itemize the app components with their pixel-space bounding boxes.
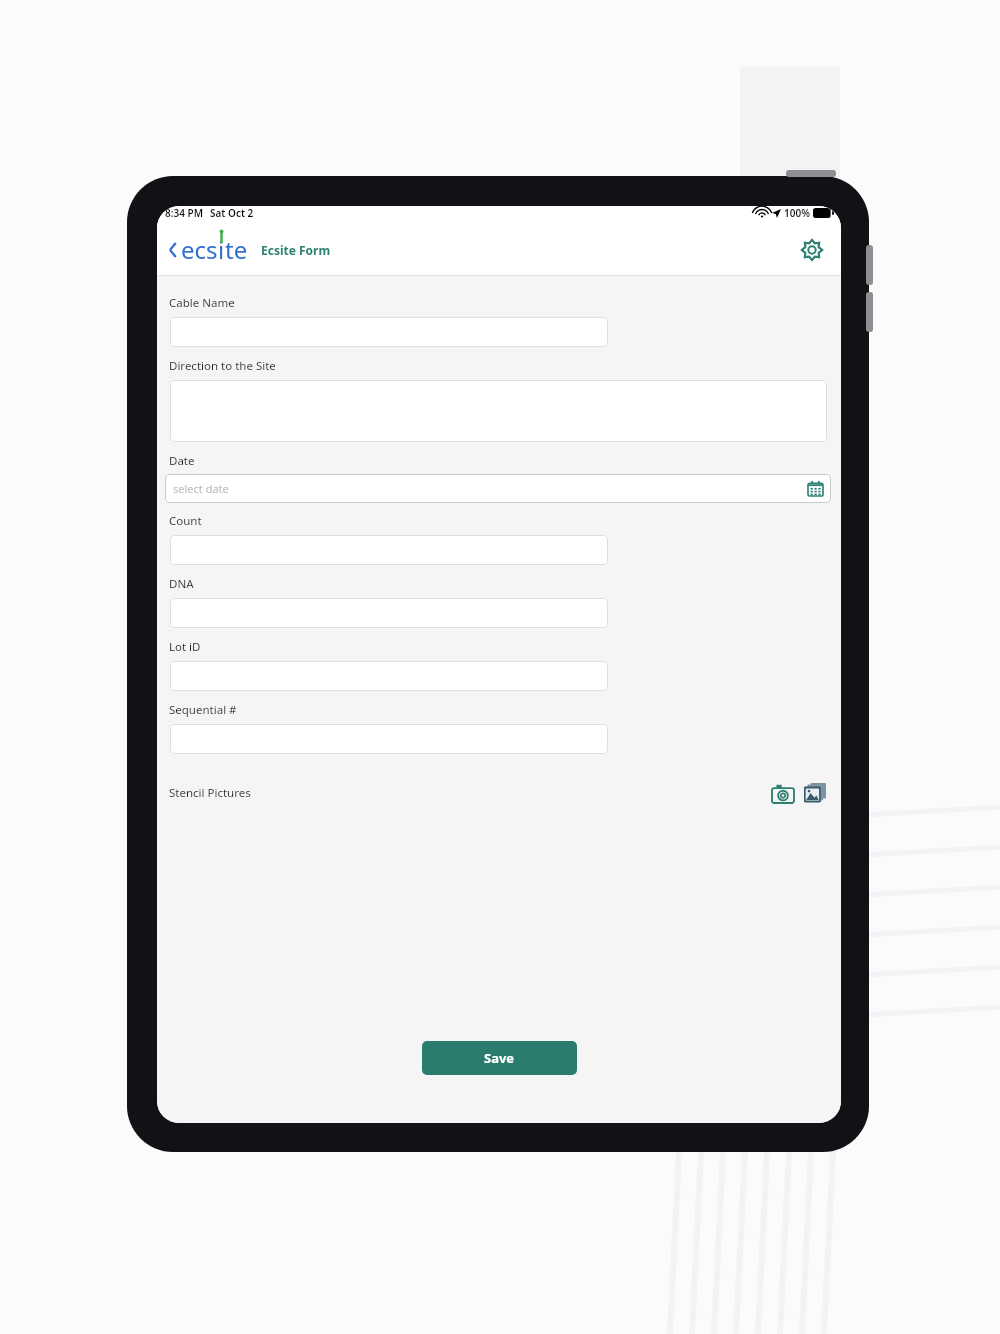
staticText: Count: [169, 513, 202, 529]
staticText: Stencil Pictures: [169, 785, 251, 801]
staticText: 8:34 PM: [165, 206, 203, 220]
button[interactable]: Take photo: [770, 780, 796, 806]
staticText: Save: [484, 1049, 515, 1067]
staticText: Cable Name: [169, 295, 235, 311]
staticText: Lot iD: [169, 639, 201, 655]
button[interactable]: select date: [165, 474, 831, 503]
button[interactable]: [170, 724, 608, 754]
button[interactable]: Settings: [797, 235, 827, 265]
staticText: 100%: [784, 206, 810, 220]
staticText: Ecsite Form: [261, 242, 331, 258]
button[interactable]: Back: [165, 236, 181, 264]
button[interactable]: [170, 317, 608, 347]
button[interactable]: [170, 380, 827, 442]
staticText: DNA: [169, 576, 194, 592]
staticText: Sat Oct 2: [210, 206, 254, 220]
staticText: Date: [169, 453, 195, 469]
button[interactable]: [170, 535, 608, 565]
button[interactable]: Save: [422, 1041, 577, 1075]
staticText: te: [225, 233, 248, 266]
staticText: i: [218, 233, 225, 266]
staticText: select date: [173, 481, 229, 496]
staticText: Direction to the Site: [169, 358, 276, 374]
staticText: ecs: [181, 233, 218, 266]
staticText: Sequential #: [169, 702, 237, 718]
button[interactable]: [170, 598, 608, 628]
button[interactable]: [170, 661, 608, 691]
button[interactable]: Choose from gallery: [802, 780, 828, 806]
